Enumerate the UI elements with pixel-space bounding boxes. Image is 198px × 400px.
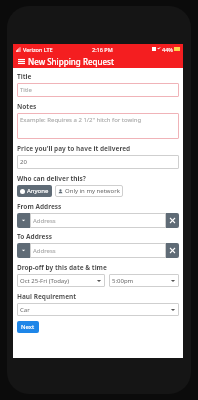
staticText: Title	[17, 72, 32, 81]
button[interactable]: Open menu	[17, 57, 25, 65]
button[interactable]: Choose saved address	[17, 213, 30, 228]
button[interactable]: Clear address	[166, 243, 179, 258]
staticText: New Shipping Request	[28, 56, 115, 67]
button[interactable]: Oct 25-Fri (Today)	[17, 274, 105, 287]
button[interactable]: 5:00pm	[109, 274, 179, 287]
staticText: Drop-off by this date & time	[17, 263, 107, 272]
button[interactable]: Next	[17, 321, 39, 333]
staticText: Title	[20, 86, 32, 94]
staticText: Only in my network	[65, 187, 120, 195]
staticText: Next	[21, 323, 35, 331]
staticText: Address	[33, 247, 56, 255]
staticText: From Address	[17, 202, 62, 211]
staticText: 2:16 PM	[92, 46, 113, 53]
staticText: Oct 25-Fri (Today)	[20, 277, 70, 285]
button[interactable]: Only in my network	[55, 185, 123, 197]
staticText: Haul Requirement	[17, 292, 77, 301]
staticText: Anyone	[27, 187, 49, 195]
staticText: Verizon LTE	[23, 46, 53, 53]
button[interactable]: Car	[17, 303, 179, 316]
staticText: Price you'll pay to have it delivered	[17, 144, 131, 153]
staticText: Car	[20, 306, 30, 314]
button[interactable]: Address	[30, 243, 166, 258]
button[interactable]: Address	[30, 213, 166, 228]
button[interactable]: Choose saved address	[17, 243, 30, 258]
staticText: Notes	[17, 102, 37, 111]
staticText: 5:00pm	[112, 277, 134, 285]
staticText: Example: Requires a 2 1/2" hitch for tow…	[20, 116, 142, 124]
staticText: Address	[33, 217, 56, 225]
staticText: To Address	[17, 232, 52, 241]
button[interactable]: 20	[17, 155, 179, 169]
staticText: 20	[20, 158, 27, 166]
button[interactable]: Anyone	[17, 185, 52, 197]
staticText: Who can deliver this?	[17, 174, 86, 183]
button[interactable]: Title	[17, 83, 179, 97]
button[interactable]: Example: Requires a 2 1/2" hitch for tow…	[17, 113, 179, 139]
button[interactable]: Clear address	[166, 213, 179, 228]
staticText: 44%	[162, 46, 173, 53]
